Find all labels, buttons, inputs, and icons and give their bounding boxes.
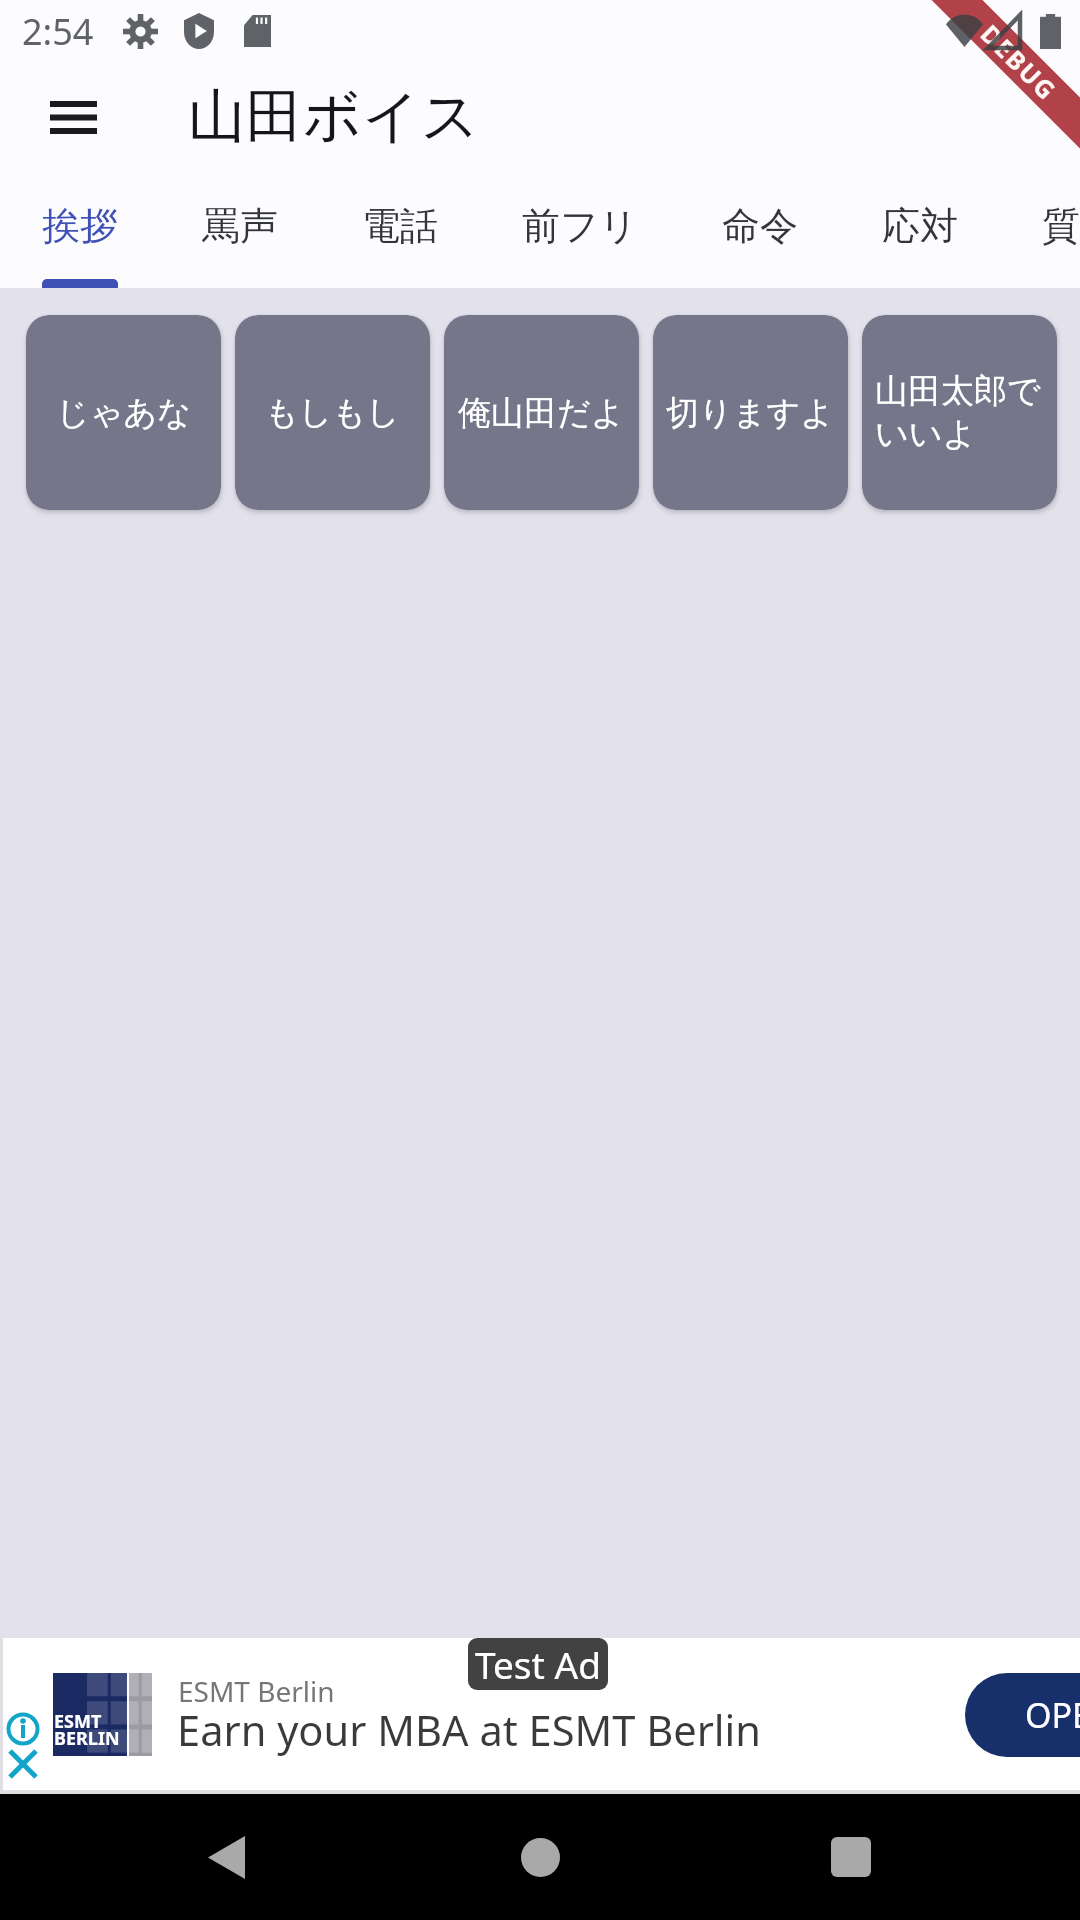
staticText: 俺山田だよ <box>458 392 625 434</box>
staticText: 質問 <box>1042 202 1080 250</box>
staticText: BERLIN <box>54 1726 120 1751</box>
staticText: 2:54 <box>22 7 94 56</box>
button[interactable]: OPEN <box>965 1673 1080 1757</box>
staticText: ESMT Berlin <box>178 1672 335 1710</box>
button[interactable]: 応対 <box>882 171 958 288</box>
staticText: 電話 <box>362 202 438 250</box>
button[interactable]: 山田太郎でいいよ <box>862 315 1057 510</box>
staticText: OPEN <box>1025 1692 1080 1738</box>
staticText: 前フリ <box>522 202 638 250</box>
staticText: 切りますよ <box>666 392 835 434</box>
staticText: 命令 <box>722 202 798 250</box>
staticText: もしもし <box>265 392 401 434</box>
staticText: 挨拶 <box>42 202 118 250</box>
button[interactable]: 命令 <box>722 171 798 288</box>
button[interactable]: 罵声 <box>202 171 278 288</box>
button[interactable]: 質問 <box>1042 171 1080 288</box>
staticText: Earn your MBA at ESMT Berlin <box>177 1702 762 1759</box>
button[interactable]: Open navigation menu <box>28 72 118 162</box>
button[interactable]: Recent apps <box>803 1809 899 1905</box>
button[interactable]: Ad info and close <box>0 1638 1080 1794</box>
button[interactable]: 電話 <box>362 171 438 288</box>
button[interactable]: 挨拶 <box>42 171 118 288</box>
staticText: 山田ボイス <box>188 81 480 153</box>
staticText: DEBUG <box>974 17 1064 107</box>
button[interactable]: Home <box>492 1809 588 1905</box>
staticText: 山田太郎でいいよ <box>875 370 1044 455</box>
staticText: じゃあな <box>56 392 192 434</box>
staticText: Test Ad <box>475 1639 601 1689</box>
other: Ad info and close <box>0 1638 46 1794</box>
button[interactable]: 切りますよ <box>653 315 848 510</box>
button[interactable]: Back <box>178 1809 274 1905</box>
staticText: 罵声 <box>202 202 278 250</box>
staticText: ESMT <box>54 1709 102 1734</box>
staticText: 応対 <box>882 202 958 250</box>
button[interactable]: 俺山田だよ <box>444 315 639 510</box>
button[interactable]: もしもし <box>235 315 430 510</box>
button[interactable]: 前フリ <box>522 171 638 288</box>
button[interactable]: じゃあな <box>26 315 221 510</box>
